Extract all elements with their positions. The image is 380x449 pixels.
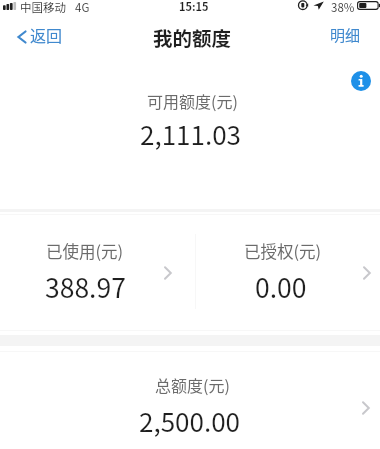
staticText: 总额度(元): [155, 373, 230, 396]
staticText: 4G: [75, 0, 90, 16]
button[interactable]: 总额度(元): [0, 352, 380, 449]
staticText: 已授权(元): [244, 239, 322, 263]
staticText: 已使用(元): [46, 239, 124, 263]
staticText: 2,500.00: [139, 402, 241, 440]
button[interactable]: 明细: [318, 22, 380, 56]
button[interactable]: 返回: [0, 21, 75, 56]
staticText: 返回: [30, 23, 63, 46]
staticText: 可用额度(元): [147, 89, 238, 112]
staticText: 38%: [331, 0, 355, 16]
staticText: 中国移动: [20, 0, 66, 16]
button[interactable]: 已授权(元): [195, 215, 380, 330]
staticText: 15:15: [179, 0, 209, 14]
staticText: 0.00: [255, 267, 307, 305]
staticText: 明细: [330, 24, 361, 46]
staticText: 我的额度: [153, 23, 232, 51]
staticText: 2,111.03: [140, 115, 242, 153]
button[interactable]: Credit limit information: [351, 71, 371, 91]
button[interactable]: 已使用(元): [0, 215, 195, 330]
staticText: 388.97: [45, 267, 126, 305]
